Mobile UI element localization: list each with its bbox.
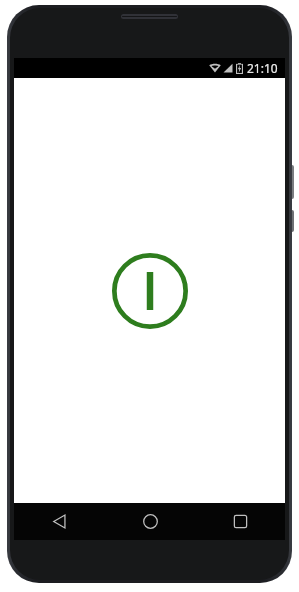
staticText: 21:10: [247, 60, 278, 76]
button[interactable]: Back: [14, 503, 105, 540]
button[interactable]: Recent apps: [195, 503, 285, 540]
button[interactable]: Power: [112, 253, 188, 329]
button[interactable]: Home: [105, 503, 195, 540]
